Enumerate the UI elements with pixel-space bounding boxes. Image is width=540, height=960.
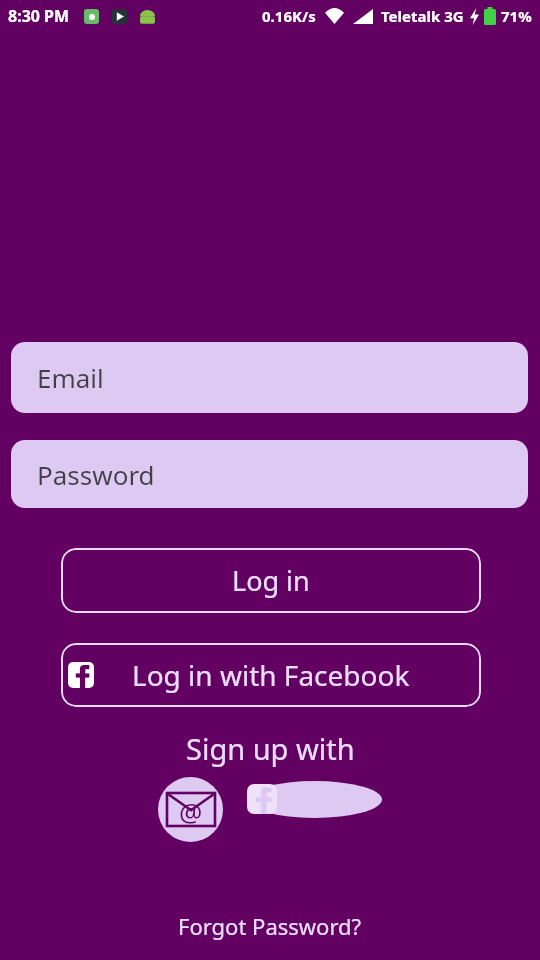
staticText: 8:30 PM: [8, 5, 70, 27]
button[interactable]: Log in with Facebook: [61, 643, 481, 707]
staticText: Log in with Facebook: [132, 656, 410, 694]
button[interactable]: @: [158, 777, 223, 842]
staticText: Forgot Password?: [178, 911, 362, 941]
button[interactable]: Password: [11, 440, 528, 508]
staticText: Sign up with: [186, 729, 355, 768]
staticText: Password: [37, 457, 155, 492]
staticText: @: [179, 794, 203, 829]
staticText: 71%: [501, 6, 532, 26]
staticText: Log in: [232, 562, 310, 599]
staticText: 0.16K/s: [262, 6, 316, 26]
button[interactable]: [247, 781, 382, 818]
button[interactable]: Email: [11, 342, 528, 413]
staticText: Email: [37, 360, 104, 395]
staticText: Teletalk 3G: [381, 6, 464, 26]
button[interactable]: Log in: [61, 548, 481, 613]
button[interactable]: Forgot Password?: [178, 911, 362, 941]
